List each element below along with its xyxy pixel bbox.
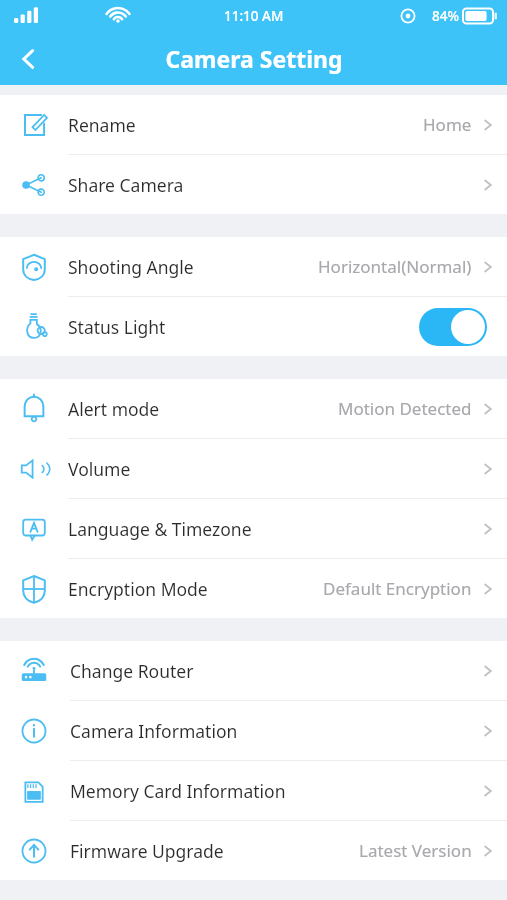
button[interactable]: Shooting Angle: [0, 237, 507, 297]
button[interactable]: Change Router: [0, 641, 507, 701]
staticText: Alert mode: [68, 397, 160, 421]
button[interactable]: Share Camera: [0, 155, 507, 214]
staticText: Home: [423, 113, 472, 136]
button[interactable]: Firmware Upgrade: [0, 821, 507, 880]
staticText: Status Light: [68, 315, 166, 339]
button[interactable]: Alert mode: [0, 379, 507, 439]
staticText: Firmware Upgrade: [70, 839, 224, 863]
button[interactable]: Back: [0, 32, 58, 85]
button[interactable]: Memory Card Information: [0, 761, 507, 821]
staticText: Camera Setting: [165, 43, 343, 74]
staticText: Default Encryption: [323, 577, 472, 600]
staticText: Shooting Angle: [68, 255, 194, 279]
staticText: Motion Detected: [338, 397, 472, 420]
staticText: Camera Information: [70, 719, 238, 743]
button[interactable]: Encryption Mode: [0, 559, 507, 618]
staticText: Encryption Mode: [68, 577, 208, 601]
staticText: Memory Card Information: [70, 779, 286, 803]
button[interactable]: Volume: [0, 439, 507, 499]
staticText: Share Camera: [68, 173, 184, 197]
staticText: Horizontal(Normal): [318, 255, 472, 278]
button[interactable]: Rename: [0, 95, 507, 155]
staticText: Change Router: [70, 659, 194, 683]
staticText: Volume: [68, 457, 131, 481]
button[interactable]: Language & Timezone: [0, 499, 507, 559]
button[interactable]: Status Light: [0, 297, 507, 356]
button[interactable]: Camera Information: [0, 701, 507, 761]
staticText: Rename: [68, 113, 136, 137]
staticText: Latest Version: [359, 839, 472, 862]
staticText: Language & Timezone: [68, 517, 252, 541]
staticText: 84%: [432, 7, 459, 25]
staticText: 11:10 AM: [224, 7, 284, 25]
